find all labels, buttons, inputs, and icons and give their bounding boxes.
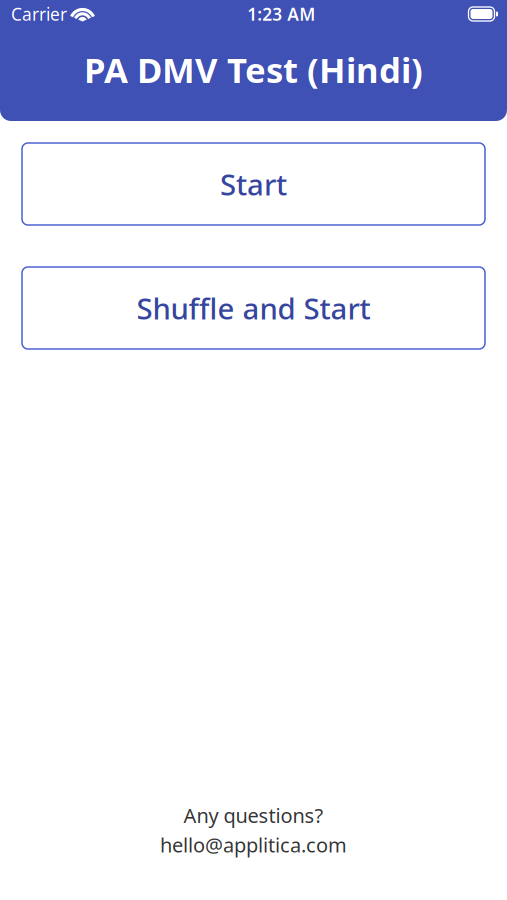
staticText: Carrier xyxy=(11,2,67,25)
staticText: Shuffle and Start xyxy=(136,288,370,327)
staticText: 1:23 AM xyxy=(247,2,315,25)
staticText: hello@applitica.com xyxy=(160,831,347,858)
staticText: Any questions? xyxy=(183,802,323,828)
button[interactable]: Start xyxy=(22,143,485,225)
staticText: PA DMV Test (Hindi) xyxy=(84,46,423,92)
staticText: Start xyxy=(220,164,287,203)
button[interactable]: Shuffle and Start xyxy=(22,267,485,349)
